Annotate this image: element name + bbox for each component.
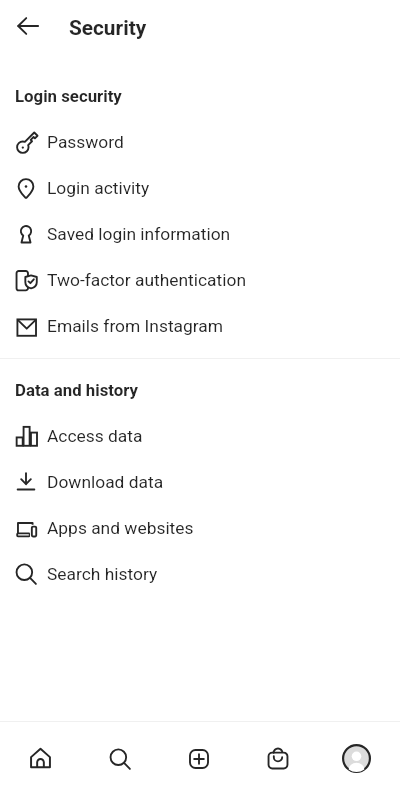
staticText: Login security bbox=[15, 86, 122, 106]
button[interactable]: New post bbox=[159, 728, 238, 789]
staticText: Two-factor authentication bbox=[47, 270, 246, 290]
button[interactable]: Search bbox=[80, 728, 159, 789]
button[interactable]: Back bbox=[4, 4, 52, 52]
staticText: Download data bbox=[47, 472, 164, 492]
button[interactable]: Apps and websites bbox=[0, 505, 400, 551]
staticText: Saved login information bbox=[47, 224, 231, 244]
button[interactable]: Password bbox=[0, 119, 400, 165]
button[interactable]: Emails from Instagram bbox=[0, 303, 400, 349]
button[interactable]: Login activity bbox=[0, 165, 400, 211]
staticText: Access data bbox=[47, 426, 143, 446]
staticText: Search history bbox=[47, 564, 158, 584]
button[interactable]: Search history bbox=[0, 551, 400, 597]
staticText: Login activity bbox=[47, 178, 150, 198]
button[interactable]: Download data bbox=[0, 459, 400, 505]
button[interactable]: Profile bbox=[317, 728, 396, 789]
staticText: Password bbox=[47, 132, 124, 152]
button[interactable]: Home bbox=[0, 728, 80, 789]
button[interactable]: Saved login information bbox=[0, 211, 400, 257]
button[interactable]: Shop bbox=[238, 728, 317, 789]
staticText: Security bbox=[69, 16, 147, 40]
staticText: Apps and websites bbox=[47, 518, 194, 538]
staticText: Data and history bbox=[15, 380, 138, 400]
staticText: Emails from Instagram bbox=[47, 316, 224, 336]
button[interactable]: Access data bbox=[0, 413, 400, 459]
button[interactable]: Two-factor authentication bbox=[0, 257, 400, 303]
